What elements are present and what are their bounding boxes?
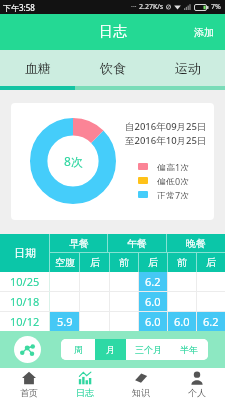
staticText: 6.0 [145, 314, 161, 329]
staticText: 血糖 [25, 60, 51, 76]
staticText: 晚餐 [186, 237, 206, 250]
staticText: 后 [148, 256, 158, 269]
staticText: 2.27K/s [139, 2, 164, 12]
staticText: 周 [74, 344, 83, 355]
staticText: 知识 [132, 387, 150, 398]
staticText: 半年 [180, 344, 198, 355]
staticText: 5.9 [57, 314, 73, 329]
staticText: 偏高1次 [157, 161, 190, 171]
staticText: 空腹 [55, 256, 75, 269]
button[interactable]: 首页 [0, 368, 57, 400]
button[interactable]: 饮食 [75, 50, 150, 90]
staticText: 6.0 [174, 314, 190, 329]
button[interactable]: Share [14, 336, 41, 363]
staticText: 饮食 [100, 60, 126, 76]
button[interactable]: 日志 [57, 368, 113, 400]
staticText: 前 [119, 256, 129, 269]
staticText: 7% [211, 2, 221, 12]
button[interactable]: 知识 [113, 368, 169, 400]
button[interactable]: 个人 [169, 368, 225, 400]
staticText: 10/12 [10, 314, 40, 329]
staticText: 6.2 [145, 274, 161, 289]
button[interactable]: 月 [95, 339, 126, 360]
staticText: 后 [90, 256, 100, 269]
staticText: 首页 [20, 387, 38, 398]
staticText: 添加 [194, 26, 214, 39]
staticText: 6.2 [203, 314, 219, 329]
staticText: 至2016年10月25日 [125, 134, 207, 147]
staticText: ··· [131, 2, 137, 12]
staticText: 日志 [76, 387, 94, 398]
staticText: 午餐 [127, 237, 147, 250]
staticText: 下午3:58 [3, 2, 35, 13]
staticText: 10/25 [10, 274, 40, 289]
staticText: 早餐 [69, 237, 89, 250]
staticText: 日志 [99, 23, 127, 41]
button[interactable]: 添加 [184, 14, 225, 50]
staticText: 后 [206, 256, 216, 269]
staticText: 正常7次 [157, 189, 190, 199]
button[interactable]: 半年 [170, 339, 208, 360]
staticText: 10/18 [10, 294, 40, 309]
button[interactable]: 血糖 [0, 50, 75, 90]
staticText: 6.0 [145, 294, 161, 309]
staticText: 8次 [64, 153, 83, 169]
staticText: 运动 [175, 60, 201, 76]
staticText: 个人 [188, 387, 206, 398]
staticText: 前 [177, 256, 187, 269]
staticText: 日期 [14, 246, 36, 260]
button[interactable]: 运动 [150, 50, 225, 90]
button[interactable]: 三个月 [126, 339, 170, 360]
staticText: 三个月 [135, 344, 162, 355]
button[interactable]: 周 [61, 339, 95, 360]
staticText: 偏低0次 [157, 175, 190, 185]
staticText: 自2016年09月25日 [125, 120, 207, 133]
staticText: 月 [106, 344, 115, 355]
